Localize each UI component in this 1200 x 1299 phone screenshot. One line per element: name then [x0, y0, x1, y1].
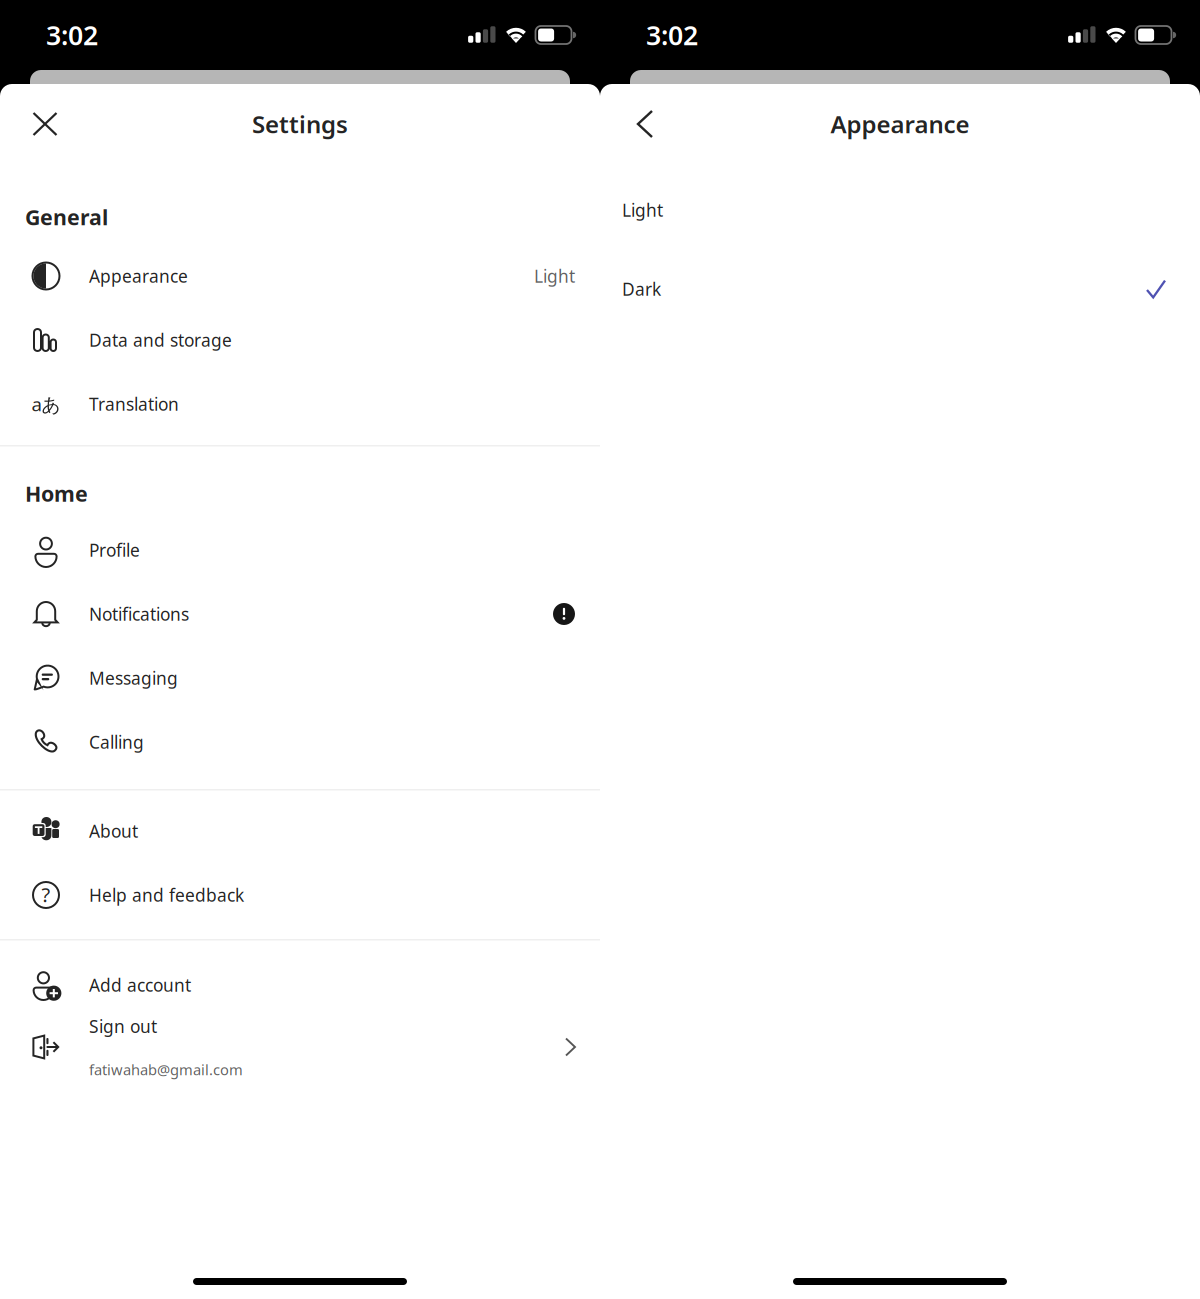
staticText: About: [89, 819, 138, 842]
staticText: Translation: [89, 392, 179, 415]
button[interactable]: aあ: [0, 372, 600, 436]
staticText: General: [25, 203, 108, 231]
button[interactable]: Appearance: [0, 244, 600, 308]
staticText: Light: [534, 264, 575, 287]
button[interactable]: Close: [22, 101, 68, 147]
button[interactable]: Messaging: [0, 646, 600, 710]
button[interactable]: Back: [622, 101, 668, 147]
staticText: Add account: [89, 973, 191, 996]
staticText: ?: [41, 881, 50, 908]
button[interactable]: Data and storage: [0, 308, 600, 372]
button[interactable]: Notifications: [0, 582, 600, 646]
staticText: fatiwahab@gmail.com: [89, 1060, 243, 1079]
staticText: Light: [622, 198, 663, 221]
staticText: Data and storage: [89, 328, 232, 351]
button[interactable]: Profile: [0, 518, 600, 582]
staticText: Notifications: [89, 602, 189, 625]
staticText: 3:02: [646, 17, 698, 53]
staticText: Profile: [89, 538, 140, 561]
staticText: Dark: [622, 277, 661, 300]
staticText: aあ: [31, 392, 60, 416]
staticText: 3:02: [46, 17, 98, 53]
staticText: Sign out: [89, 1015, 157, 1038]
button[interactable]: Add account: [0, 953, 600, 1017]
staticText: Appearance: [830, 108, 969, 140]
staticText: Settings: [252, 108, 348, 140]
staticText: Messaging: [89, 666, 178, 689]
staticText: Home: [25, 479, 88, 508]
button[interactable]: Light: [600, 184, 1200, 236]
button[interactable]: Dark: [600, 263, 1200, 315]
staticText: Help and feedback: [89, 883, 244, 906]
button[interactable]: ?: [0, 863, 600, 927]
button[interactable]: Calling: [0, 710, 600, 774]
staticText: Appearance: [89, 264, 188, 287]
staticText: Calling: [89, 730, 144, 753]
button[interactable]: Sign out: [0, 1003, 600, 1091]
button[interactable]: About: [0, 799, 600, 863]
